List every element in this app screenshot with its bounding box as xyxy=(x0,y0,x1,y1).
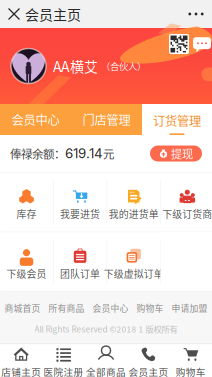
staticText: 商城首页 xyxy=(4,301,40,314)
staticText: 下级会员 xyxy=(6,266,46,280)
staticText: 会员主页 xyxy=(128,365,168,377)
button[interactable]: 会员中心 xyxy=(88,302,132,314)
staticText: 619.14 xyxy=(65,145,103,161)
staticText: 购物车 xyxy=(136,301,163,314)
button[interactable]: QR code xyxy=(169,34,189,54)
button[interactable]: 订货管理 xyxy=(142,104,212,135)
staticText: 店铺主页 xyxy=(1,365,41,377)
button[interactable]: 医院注册 xyxy=(42,344,85,377)
staticText: 团队订单 xyxy=(60,266,100,280)
button[interactable]: 商城首页 xyxy=(0,302,44,314)
button[interactable]: 会员中心 xyxy=(0,104,71,135)
staticText: 会员主页 xyxy=(25,4,81,24)
button[interactable]: 下级订货商 xyxy=(161,173,212,232)
button[interactable]: 会员主页 xyxy=(127,344,170,377)
staticText: 门店管理 xyxy=(82,111,130,128)
button[interactable]: 团队订单 xyxy=(54,232,107,291)
staticText: 订货管理 xyxy=(153,112,201,129)
button[interactable]: 下级虚拟订单 xyxy=(107,232,160,291)
staticText: 所有商品 xyxy=(48,301,84,314)
button[interactable]: 库存 xyxy=(0,173,53,232)
staticText: 会员中心 xyxy=(11,111,59,128)
button[interactable]: 购物车 xyxy=(132,302,167,314)
button[interactable]: 所有商品 xyxy=(44,302,88,314)
button[interactable]: 全部商品 xyxy=(85,344,127,377)
staticText: 提现 xyxy=(171,145,193,162)
button[interactable]: 申请加盟 xyxy=(167,302,211,314)
button[interactable]: 店铺主页 xyxy=(0,344,42,377)
button[interactable]: 下级会员 xyxy=(0,232,53,291)
staticText: All Rights Reserved ©2018 1 版权所有 xyxy=(34,323,177,335)
staticText: 购物车 xyxy=(176,365,206,377)
staticText: 申请加盟 xyxy=(171,301,207,314)
button[interactable]: Messages xyxy=(193,35,211,52)
staticText: 医院注册 xyxy=(44,365,84,377)
staticText: AA横艾 xyxy=(53,56,98,76)
staticText: 库存 xyxy=(16,207,36,221)
button[interactable]: 提现 xyxy=(150,145,202,161)
staticText: 我的进货单 xyxy=(109,207,159,221)
staticText: 下级订货商 xyxy=(162,207,212,221)
staticText: 俸禄余额： xyxy=(10,145,65,162)
staticText: 会员中心 xyxy=(92,301,128,314)
button[interactable]: 门店管理 xyxy=(71,104,142,135)
button[interactable]: 我要进货 xyxy=(54,173,107,232)
staticText: 下级虚拟订单 xyxy=(104,266,164,280)
staticText: 全部商品 xyxy=(86,365,126,377)
staticText: 我要进货 xyxy=(60,207,100,221)
button[interactable]: 购物车 xyxy=(170,344,212,377)
staticText: 元 xyxy=(103,145,114,162)
button[interactable]: 我的进货单 xyxy=(107,173,160,232)
staticText: （合伙人） xyxy=(101,59,146,73)
button[interactable]: Close xyxy=(3,0,25,28)
button[interactable]: More options xyxy=(182,0,210,28)
